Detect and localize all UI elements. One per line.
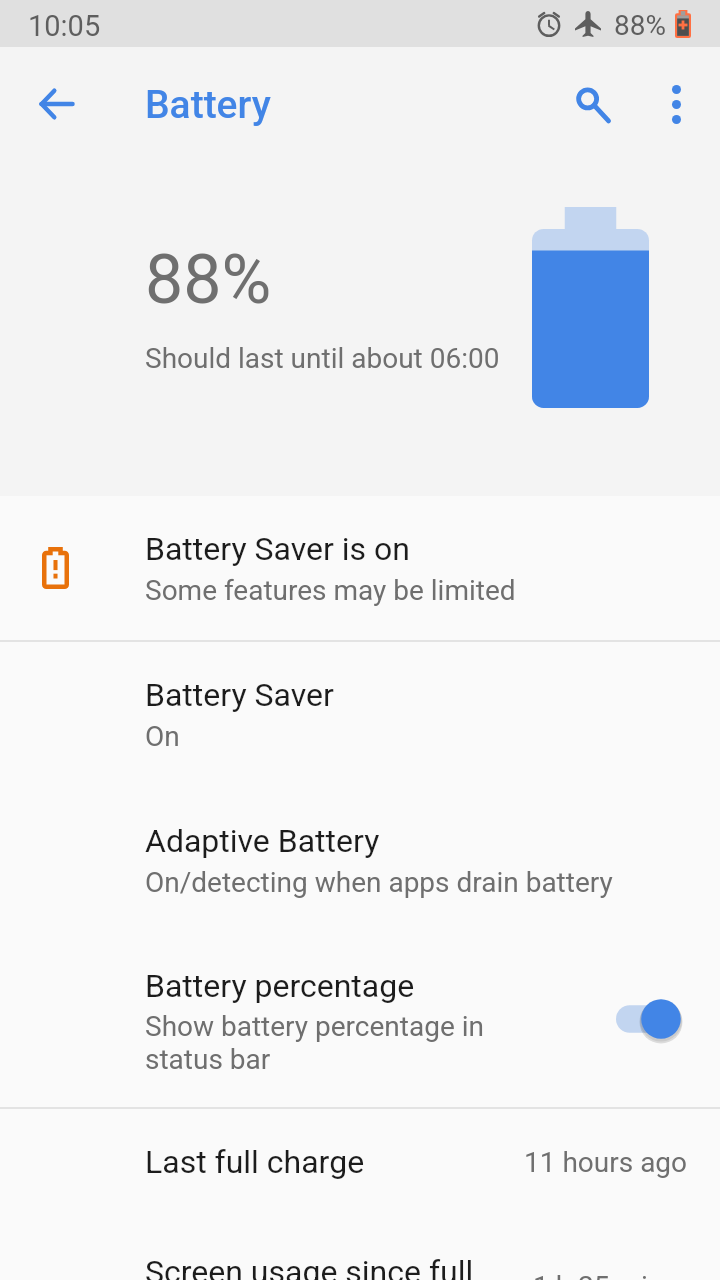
staticText: Battery — [145, 82, 271, 128]
button[interactable]: Adaptive Battery — [0, 788, 720, 933]
staticText: On — [145, 720, 180, 753]
button[interactable]: More options — [644, 72, 708, 136]
button[interactable]: Last full charge — [0, 1109, 720, 1219]
button[interactable]: Battery Saver is on — [0, 496, 720, 640]
button[interactable]: Battery percentage — [0, 933, 720, 1107]
button[interactable]: Battery Saver — [0, 642, 720, 788]
staticText: 10:05 — [28, 9, 101, 43]
staticText: Should last until about 06:00 — [145, 342, 500, 375]
button[interactable]: Navigate up — [25, 72, 89, 136]
staticText: Adaptive Battery — [145, 822, 380, 860]
staticText: Battery percentage — [145, 967, 415, 1005]
staticText: On/detecting when apps drain battery — [145, 866, 613, 899]
button[interactable]: Toggle battery percentage — [600, 991, 680, 1047]
button[interactable]: Screen usage since full charge — [0, 1219, 720, 1280]
staticText: 11 hours ago — [524, 1146, 688, 1179]
staticText: 88% — [614, 9, 666, 42]
staticText: Some features may be limited — [145, 574, 516, 607]
staticText: 88% — [145, 240, 272, 320]
staticText: Screen usage since full charge — [145, 1253, 474, 1280]
staticText: Last full charge — [145, 1143, 365, 1181]
staticText: Battery Saver is on — [145, 530, 410, 568]
staticText: 1 h 25 min — [533, 1270, 664, 1280]
button[interactable]: Search — [560, 72, 624, 136]
staticText: Show battery percentage in status bar — [145, 1010, 484, 1076]
staticText: Battery Saver — [145, 676, 334, 714]
